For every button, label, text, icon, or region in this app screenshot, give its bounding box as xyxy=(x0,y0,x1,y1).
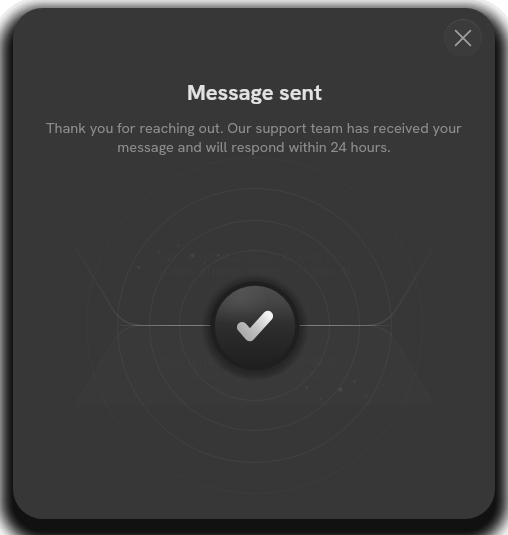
button[interactable]: Message delivered xyxy=(201,272,309,380)
button[interactable]: Close xyxy=(444,19,482,57)
staticText: Message sent xyxy=(187,78,322,107)
staticText: Thank you for reaching out. Our support … xyxy=(39,118,469,157)
